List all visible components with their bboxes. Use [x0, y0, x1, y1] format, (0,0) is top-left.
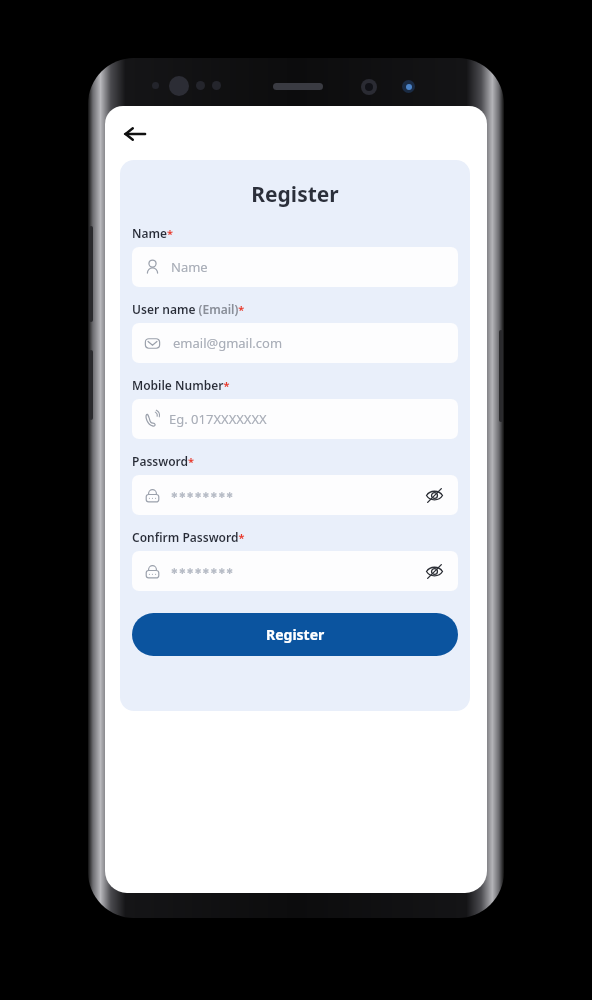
staticText: Register [266, 625, 325, 644]
staticText: Name* [132, 225, 174, 241]
button[interactable]: Eg. 017XXXXXXX [132, 399, 458, 439]
button[interactable]: ✱✱✱✱✱✱✱✱ [132, 475, 458, 515]
staticText: Register [132, 180, 458, 209]
button[interactable]: Register [132, 613, 458, 656]
staticText: Eg. 017XXXXXXX [169, 410, 267, 428]
staticText: Confirm Password* [132, 529, 245, 545]
staticText: ✱✱✱✱✱✱✱✱ [171, 567, 235, 576]
staticText: Mobile Number* [132, 377, 230, 393]
button[interactable]: email@gmail.com [132, 323, 458, 363]
button[interactable]: Show password [420, 557, 448, 585]
staticText: ✱✱✱✱✱✱✱✱ [171, 491, 235, 500]
staticText: User name (Email)* [132, 301, 245, 317]
button[interactable]: Name [132, 247, 458, 287]
button[interactable]: Back [117, 116, 153, 152]
staticText: Password* [132, 453, 195, 469]
button[interactable]: Show password [420, 481, 448, 509]
button[interactable]: ✱✱✱✱✱✱✱✱ [132, 551, 458, 591]
staticText: Name [171, 258, 208, 276]
staticText: email@gmail.com [173, 334, 283, 352]
